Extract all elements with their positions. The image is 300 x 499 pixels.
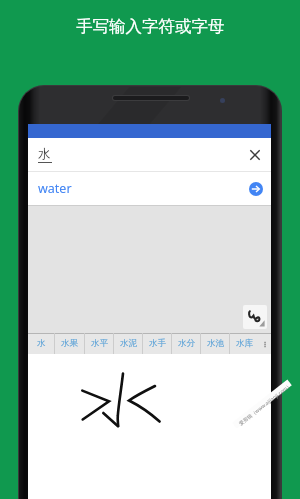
staticText: 手写输入字符或字母 bbox=[76, 16, 225, 37]
staticText: 爱剪辑（www.aijianji.com） bbox=[238, 382, 293, 427]
button[interactable]: 水分 bbox=[172, 333, 200, 354]
button[interactable]: 水库 bbox=[230, 333, 258, 354]
staticText: 水果 bbox=[61, 338, 78, 349]
staticText: water bbox=[38, 180, 72, 197]
staticText: 水手 bbox=[149, 338, 166, 349]
staticText: 水库 bbox=[236, 338, 253, 349]
button[interactable]: 水 bbox=[28, 138, 271, 171]
button[interactable]: More options bbox=[258, 333, 271, 354]
button[interactable]: 水泥 bbox=[114, 333, 142, 354]
button[interactable]: Handwriting keyboard bbox=[243, 305, 267, 329]
button[interactable]: 水 bbox=[28, 333, 54, 354]
button[interactable]: 水手 bbox=[143, 333, 171, 354]
staticText: 水平 bbox=[91, 338, 108, 349]
staticText: 水池 bbox=[207, 338, 224, 349]
button[interactable]: 水平 bbox=[85, 333, 113, 354]
button[interactable]: Clear bbox=[247, 147, 263, 163]
button[interactable] bbox=[28, 354, 271, 499]
button[interactable]: Search water bbox=[249, 182, 263, 196]
button[interactable]: water bbox=[28, 172, 271, 205]
staticText: 水 bbox=[38, 146, 51, 162]
button[interactable]: 水果 bbox=[55, 333, 84, 354]
staticText: 水 bbox=[37, 338, 46, 349]
staticText: 水分 bbox=[178, 338, 195, 349]
button[interactable]: 水池 bbox=[201, 333, 229, 354]
staticText: 水泥 bbox=[120, 338, 137, 349]
